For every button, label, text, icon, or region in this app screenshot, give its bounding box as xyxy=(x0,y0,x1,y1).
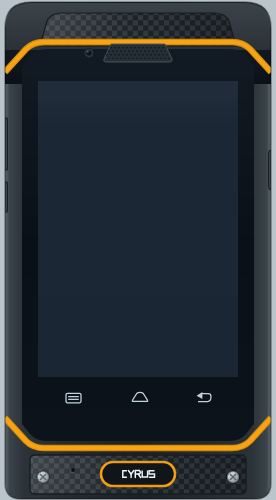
button[interactable]: Cyrus xyxy=(101,462,175,486)
button[interactable]: Back xyxy=(188,384,220,410)
button[interactable]: Home xyxy=(124,384,156,410)
button[interactable]: Recent apps xyxy=(58,386,90,412)
